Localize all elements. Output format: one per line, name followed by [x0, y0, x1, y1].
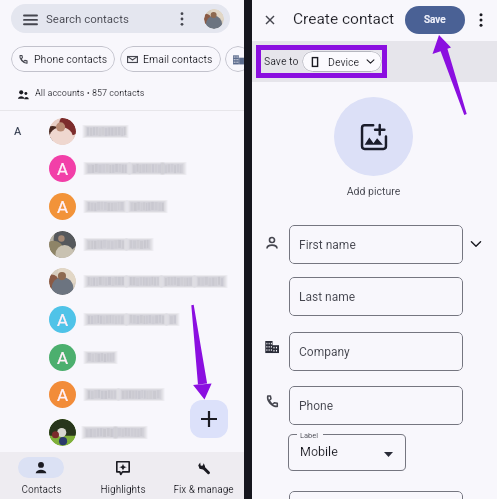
- staticText: Create contact: [293, 10, 395, 28]
- button[interactable]: A: [0, 301, 244, 338]
- staticText: A: [14, 125, 22, 138]
- button[interactable]: Email contacts: [120, 46, 221, 72]
- button[interactable]: More options: [171, 8, 193, 30]
- button[interactable]: First name: [289, 225, 463, 264]
- button[interactable]: Expand name fields: [465, 233, 487, 255]
- button[interactable]: A: [0, 150, 244, 187]
- button[interactable]: All accounts • 857 contacts: [17, 86, 157, 104]
- staticText: A: [57, 310, 69, 330]
- staticText: Last name: [299, 290, 356, 304]
- button[interactable]: Label: [288, 434, 406, 471]
- button[interactable]: Last name: [289, 277, 463, 316]
- button[interactable]: [0, 226, 244, 263]
- button[interactable]: Close: [261, 11, 279, 29]
- button[interactable]: [289, 491, 463, 499]
- staticText: Company: [299, 345, 350, 359]
- button[interactable]: Fix & manage: [163, 452, 244, 499]
- button[interactable]: Add picture: [334, 97, 413, 176]
- button[interactable]: Phone contacts: [11, 46, 115, 72]
- button[interactable]: [0, 263, 244, 300]
- staticText: Phone contacts: [34, 53, 108, 65]
- staticText: Save to: [264, 55, 299, 67]
- staticText: A: [57, 159, 69, 179]
- button[interactable]: Save: [405, 6, 465, 34]
- button[interactable]: Phone: [289, 386, 463, 425]
- staticText: Label: [300, 431, 319, 440]
- button[interactable]: A: [0, 376, 244, 413]
- staticText: Contacts: [21, 484, 62, 496]
- staticText: First name: [299, 238, 356, 252]
- button[interactable]: Account: [204, 9, 224, 29]
- button[interactable]: A: [0, 339, 244, 376]
- button[interactable]: Company: [289, 332, 463, 371]
- staticText: Device: [328, 56, 360, 68]
- button[interactable]: Search contacts: [11, 4, 230, 33]
- button[interactable]: Contacts: [0, 452, 82, 499]
- button[interactable]: Create contact: [190, 400, 228, 438]
- button[interactable]: Device: [302, 51, 382, 72]
- button[interactable]: [0, 113, 244, 150]
- staticText: A: [57, 197, 69, 217]
- button[interactable]: [0, 414, 244, 451]
- button[interactable]: Highlights: [82, 452, 163, 499]
- staticText: Email contacts: [143, 53, 213, 65]
- staticText: Phone: [299, 399, 334, 413]
- staticText: Mobile: [300, 444, 338, 459]
- staticText: Search contacts: [46, 12, 129, 25]
- button[interactable]: Work contacts: [225, 46, 251, 72]
- staticText: All accounts • 857 contacts: [35, 88, 145, 99]
- staticText: A: [57, 385, 69, 405]
- staticText: A: [57, 348, 69, 368]
- staticText: Add picture: [334, 185, 413, 197]
- button[interactable]: A: [0, 188, 244, 225]
- staticText: Save: [424, 14, 446, 26]
- staticText: Highlights: [100, 484, 146, 496]
- button[interactable]: More options: [470, 9, 492, 31]
- staticText: Fix & manage: [173, 484, 234, 496]
